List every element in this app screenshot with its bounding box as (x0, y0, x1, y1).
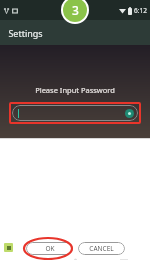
button[interactable]: Show password (12, 105, 138, 121)
staticText: 6:12 (134, 6, 147, 15)
staticText: 3 (72, 2, 79, 18)
staticText: CANCEL (89, 244, 114, 253)
button[interactable]: CANCEL (78, 242, 125, 255)
button[interactable]: Show password (125, 109, 134, 118)
button[interactable]: OK (26, 242, 73, 255)
staticText: Settings (8, 27, 43, 39)
staticText: Please Input Password (35, 85, 115, 95)
staticText: OK (45, 244, 55, 253)
